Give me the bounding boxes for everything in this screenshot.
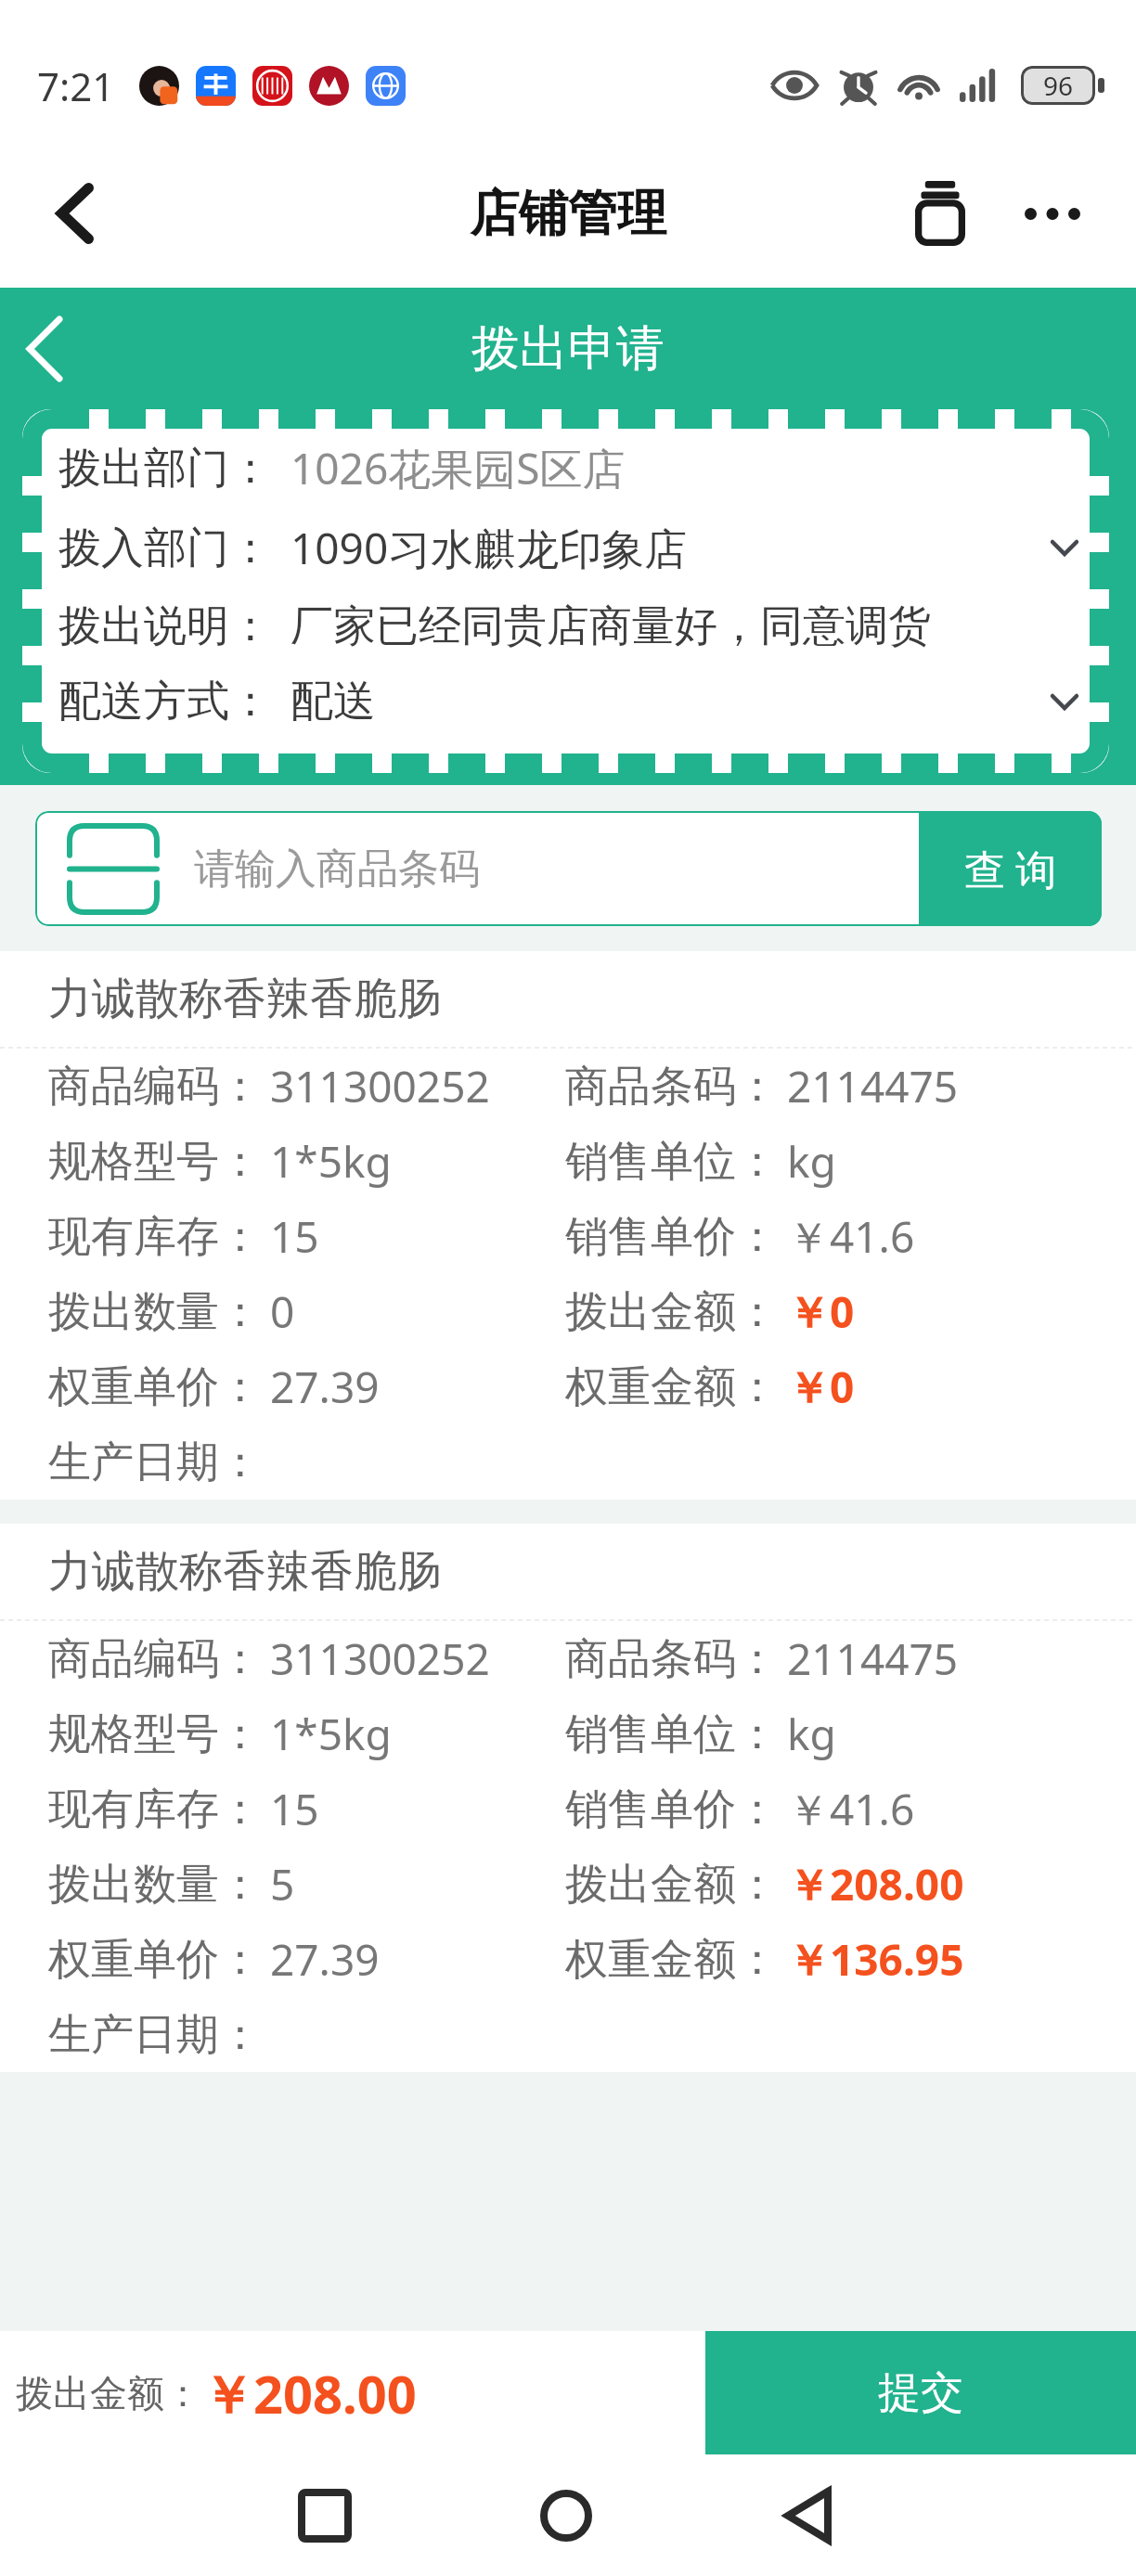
staticText: 配送	[290, 675, 1051, 728]
staticText: 96	[1043, 68, 1074, 103]
staticText: 商品条码：	[565, 1632, 779, 1686]
staticText: 1090习水麒龙印象店	[290, 519, 1051, 577]
staticText: 现有库存：	[48, 1783, 262, 1836]
staticText: 生产日期：	[48, 1436, 262, 1489]
staticText: kg	[787, 1132, 836, 1191]
staticText: 权重单价：	[48, 1360, 262, 1414]
staticText: 7:21	[37, 59, 115, 111]
staticText: 5	[270, 1855, 295, 1913]
staticText: 拨出申请	[471, 318, 665, 380]
staticText: 15	[270, 1780, 319, 1838]
staticText: 规格型号：	[48, 1135, 262, 1189]
staticText: 商品编码：	[48, 1060, 262, 1114]
staticText: 配送方式：	[58, 675, 272, 728]
button[interactable]: Back	[747, 2455, 868, 2576]
staticText: 销售单位：	[565, 1135, 779, 1189]
staticText: ￥41.6	[787, 1207, 915, 1266]
button[interactable]: 提交	[705, 2331, 1136, 2454]
staticText: ￥0	[787, 1282, 855, 1341]
staticText: 1*5kg	[270, 1705, 392, 1763]
staticText: 2114475	[787, 1057, 959, 1115]
staticText: 商品编码：	[48, 1632, 262, 1686]
staticText: 拨入部门：	[58, 522, 272, 575]
staticText: 规格型号：	[48, 1707, 262, 1761]
staticText: kg	[787, 1705, 836, 1763]
button[interactable]: More options	[1006, 167, 1099, 260]
staticText: 拨出部门：	[58, 442, 272, 496]
button[interactable]: Home	[506, 2455, 626, 2576]
staticText: ￥0	[787, 1358, 855, 1416]
staticText: 权重金额：	[565, 1933, 779, 1987]
staticText: 现有库存：	[48, 1210, 262, 1264]
staticText: 力诚散称香辣香脆肠	[48, 972, 441, 1026]
staticText: 提交	[878, 2366, 963, 2420]
staticText: 权重单价：	[48, 1933, 262, 1987]
staticText: 生产日期：	[48, 2008, 262, 2062]
button[interactable]: Back	[0, 304, 89, 393]
staticText: 请输入商品条码	[194, 844, 919, 895]
staticText: 311300252	[270, 1057, 490, 1115]
staticText: 销售单价：	[565, 1210, 779, 1264]
button[interactable]: 查 询	[919, 811, 1102, 926]
staticText: 拨出金额：	[16, 2370, 201, 2416]
staticText: 商品条码：	[565, 1060, 779, 1114]
staticText: 2114475	[787, 1629, 959, 1688]
staticText: 厂家已经同贵店商量好，同意调货	[290, 599, 1078, 653]
staticText: 店铺管理	[470, 183, 666, 245]
staticText: ￥136.95	[787, 1930, 964, 1989]
staticText: 销售单位：	[565, 1707, 779, 1761]
staticText: 权重金额：	[565, 1360, 779, 1414]
staticText: 销售单价：	[565, 1783, 779, 1836]
staticText: ￥41.6	[787, 1780, 915, 1838]
staticText: 拨出金额：	[565, 1285, 779, 1339]
staticText: 1*5kg	[270, 1132, 392, 1191]
staticText: 拨出数量：	[48, 1285, 262, 1339]
button[interactable]: Back	[24, 162, 126, 264]
staticText: 27.39	[270, 1358, 380, 1416]
staticText: 拨出金额：	[565, 1858, 779, 1912]
staticText: 27.39	[270, 1930, 380, 1989]
button[interactable]: Recents	[265, 2455, 385, 2576]
staticText: 0	[270, 1282, 295, 1341]
staticText: 311300252	[270, 1629, 490, 1688]
staticText: 力诚散称香辣香脆肠	[48, 1544, 441, 1599]
staticText: 15	[270, 1207, 319, 1266]
button[interactable]: Multi-window	[894, 167, 987, 260]
staticText: 1026花果园S区店	[290, 439, 1078, 497]
staticText: ￥208.00	[201, 2358, 417, 2428]
staticText: 查 询	[964, 841, 1057, 896]
staticText: 拨出说明：	[58, 599, 272, 653]
staticText: ￥208.00	[787, 1855, 964, 1913]
staticText: 拨出数量：	[48, 1858, 262, 1912]
